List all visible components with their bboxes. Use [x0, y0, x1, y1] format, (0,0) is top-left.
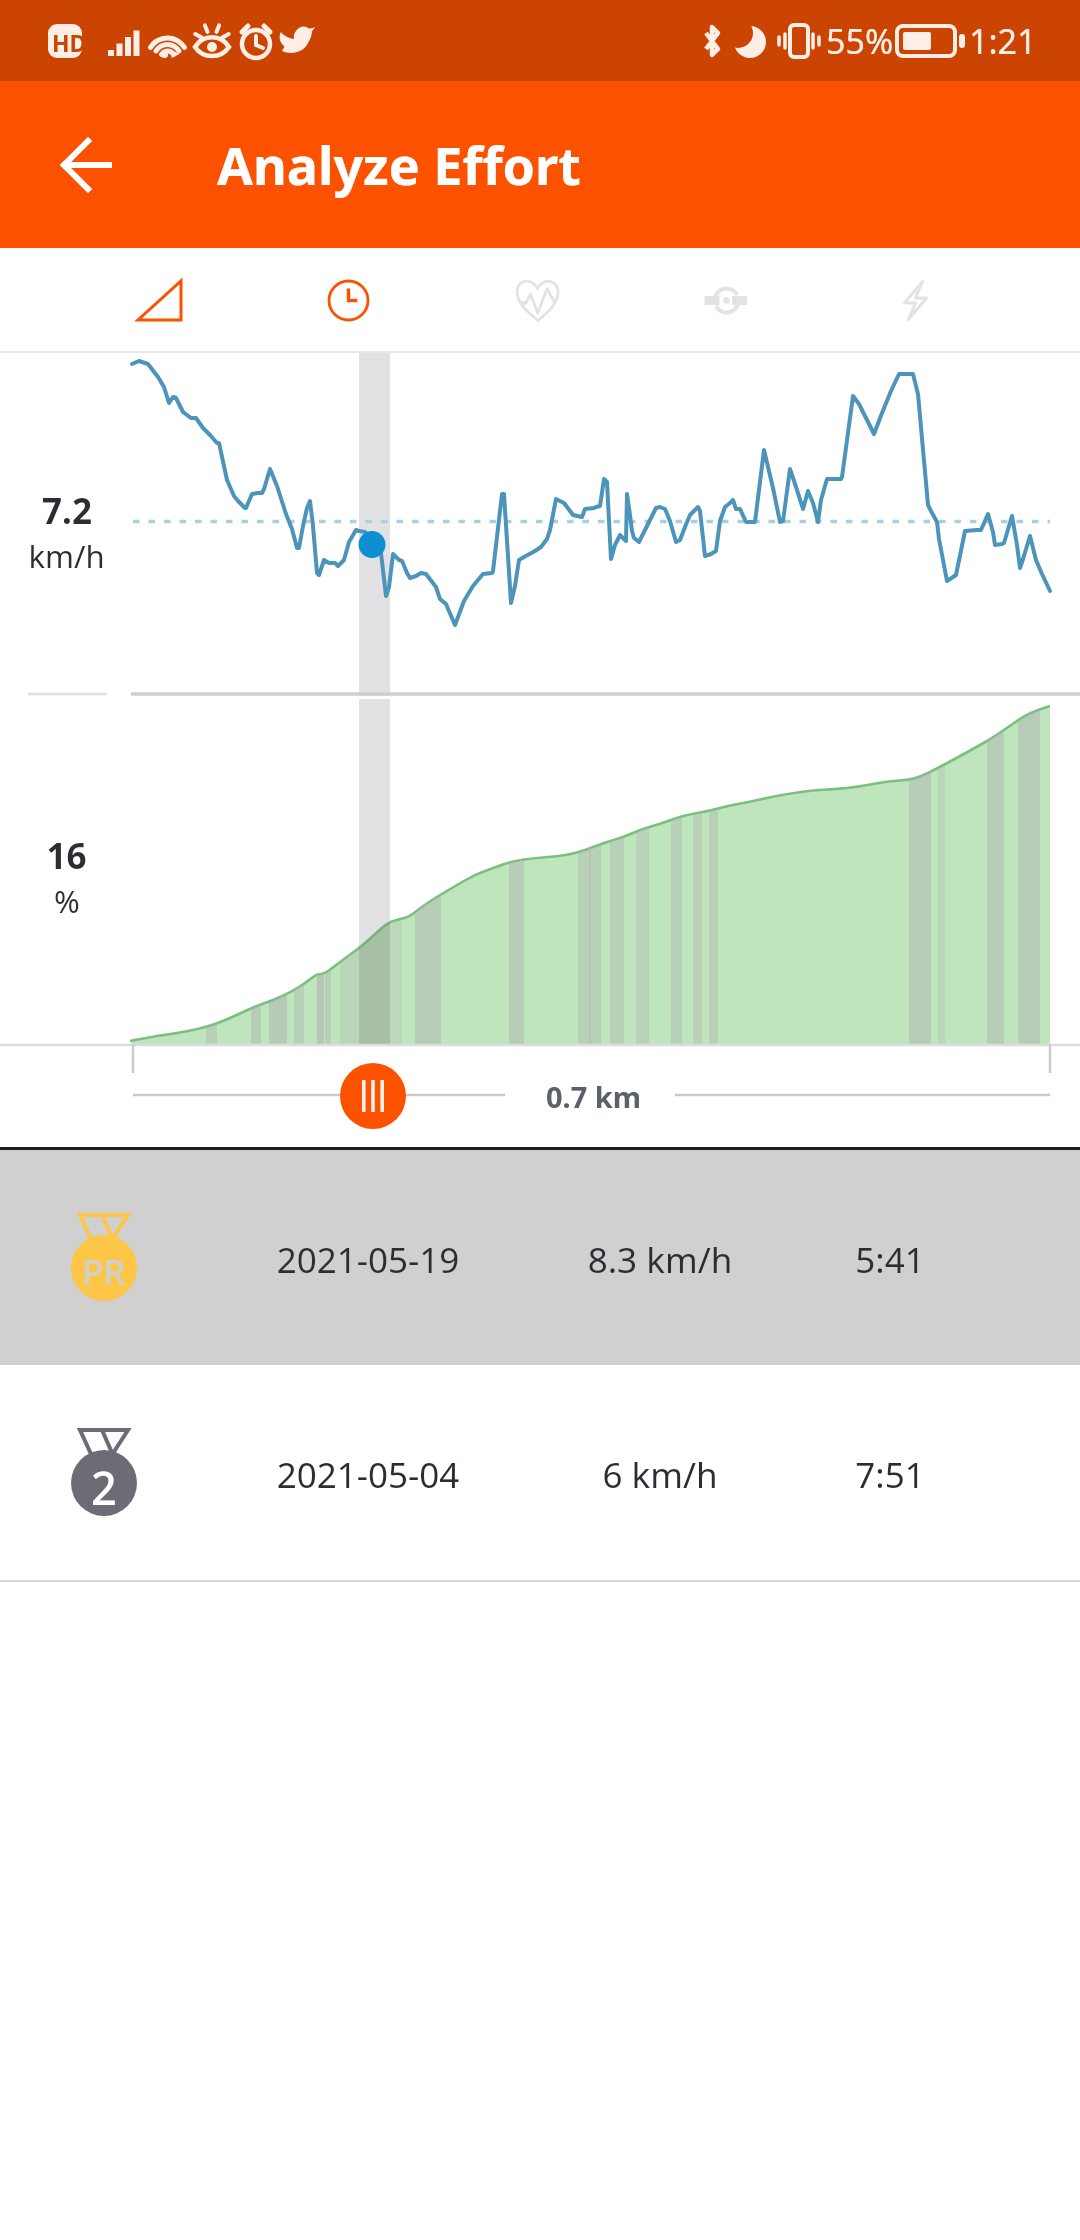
button[interactable]: 2 [0, 1365, 1080, 1580]
button[interactable]: Scrubber [340, 1063, 406, 1129]
button[interactable]: Back [29, 106, 146, 223]
staticText: 1:21 [969, 18, 1037, 64]
staticText: 7.2 [42, 487, 92, 535]
staticText: HD [52, 27, 87, 58]
staticText: 55% [826, 18, 894, 64]
staticText: 8.3 km/h [528, 1236, 792, 1284]
staticText: % [54, 880, 80, 922]
staticText: 2021-05-04 [208, 1451, 528, 1499]
staticText: 6 km/h [528, 1451, 792, 1499]
button[interactable]: Cadence [632, 248, 821, 353]
staticText: 2021-05-19 [208, 1236, 528, 1284]
button[interactable]: Time [254, 248, 443, 353]
button[interactable]: Power [821, 248, 1010, 353]
staticText: 16 [46, 832, 87, 880]
button[interactable]: Elevation [65, 248, 254, 353]
staticText: 5:41 [792, 1236, 988, 1284]
staticText: km/h [28, 535, 105, 577]
button[interactable]: PR [0, 1150, 1080, 1365]
button[interactable]: Heart rate [443, 248, 632, 353]
staticText: 0.7 km [546, 1077, 642, 1116]
staticText: 7:51 [792, 1451, 988, 1499]
staticText: 2 [91, 1457, 117, 1518]
staticText: Analyze Effort [217, 129, 581, 200]
staticText: PR [82, 1248, 126, 1296]
